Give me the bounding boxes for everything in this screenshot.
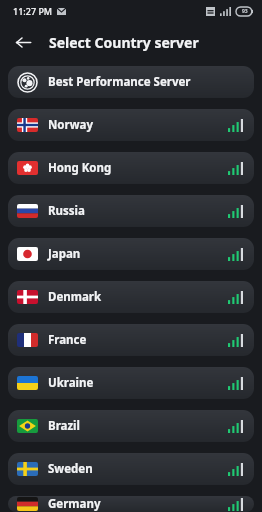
button[interactable]: Best Performance Server bbox=[8, 66, 254, 98]
staticText: Ukraine bbox=[48, 375, 94, 391]
staticText: Best Performance Server bbox=[48, 74, 191, 90]
staticText: Denmark bbox=[48, 289, 102, 305]
button[interactable]: Russia bbox=[8, 195, 254, 227]
button[interactable]: Sweden bbox=[8, 453, 254, 485]
button[interactable]: Denmark bbox=[8, 281, 254, 313]
staticText: Hong Kong bbox=[48, 160, 112, 176]
button[interactable]: Germany bbox=[8, 496, 254, 512]
button[interactable]: Ukraine bbox=[8, 367, 254, 399]
button[interactable]: Norway bbox=[8, 109, 254, 141]
button[interactable]: Japan bbox=[8, 238, 254, 270]
staticText: Brazil bbox=[48, 418, 80, 434]
button[interactable]: Brazil bbox=[8, 410, 254, 442]
staticText: Germany bbox=[48, 496, 101, 512]
staticText: Japan bbox=[48, 246, 81, 262]
staticText: France bbox=[48, 332, 87, 348]
button[interactable]: Hong Kong bbox=[8, 152, 254, 184]
staticText: Select Country server bbox=[49, 33, 199, 52]
staticText: 11:27 PM bbox=[13, 5, 53, 17]
staticText: Russia bbox=[48, 203, 85, 219]
button[interactable]: France bbox=[8, 324, 254, 356]
staticText: Sweden bbox=[48, 461, 93, 477]
button[interactable]: Back bbox=[6, 25, 40, 59]
staticText: 93 bbox=[242, 8, 248, 15]
staticText: Norway bbox=[48, 117, 93, 133]
